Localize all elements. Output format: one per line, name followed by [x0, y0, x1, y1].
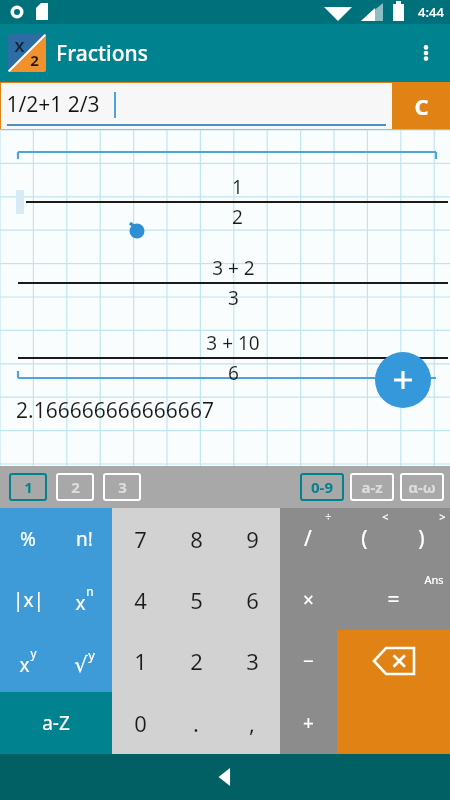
button[interactable]: 0 — [112, 692, 168, 754]
button[interactable]: ) — [393, 508, 450, 569]
staticText: − — [303, 648, 314, 674]
staticText: 6 — [246, 585, 259, 615]
staticText: 8 — [190, 524, 203, 554]
staticText: 4 — [134, 585, 147, 615]
staticText: y — [30, 645, 37, 661]
button[interactable]: Back — [203, 755, 247, 799]
staticText: × — [303, 587, 314, 613]
button[interactable]: / — [280, 508, 336, 569]
button[interactable]: More options — [402, 29, 450, 77]
button[interactable]: + — [280, 692, 337, 754]
staticText: C — [414, 91, 429, 121]
staticText: ) — [418, 524, 425, 553]
button[interactable]: 1 — [9, 473, 47, 501]
staticText: 3 — [228, 285, 239, 311]
button[interactable]: , — [224, 692, 280, 754]
button[interactable]: . — [168, 692, 224, 754]
staticText: 2 — [232, 204, 243, 230]
staticText: α-ω — [408, 477, 436, 497]
button[interactable]: a-z — [350, 473, 394, 501]
button[interactable]: Backspace — [337, 630, 450, 692]
staticText: 3 + 2 — [212, 255, 255, 281]
button[interactable]: x — [0, 630, 56, 692]
staticText: n — [86, 583, 94, 599]
staticText: X — [14, 36, 25, 56]
button[interactable]: × — [280, 569, 337, 630]
staticText: Fractions — [56, 39, 148, 68]
staticText: 2 — [71, 477, 80, 497]
button[interactable]: 3 — [103, 473, 141, 501]
button[interactable]: 1 — [112, 630, 168, 692]
staticText: 0-9 — [311, 477, 333, 497]
button[interactable]: 2 — [56, 473, 94, 501]
staticText: + — [303, 710, 314, 736]
staticText: 6 — [228, 360, 239, 386]
button[interactable]: − — [280, 630, 337, 692]
staticText: n! — [76, 526, 93, 552]
staticText: √ — [74, 653, 88, 677]
button[interactable]: Add — [375, 352, 431, 408]
staticText: 3 + 10 — [206, 330, 260, 356]
button[interactable]: App icon — [8, 34, 46, 72]
button[interactable]: C — [392, 82, 450, 130]
staticText: 1 — [24, 477, 33, 497]
button[interactable]: 6 — [224, 569, 280, 630]
staticText: 2 — [30, 50, 39, 70]
staticText: 0 — [134, 708, 147, 738]
staticText: Ans — [424, 572, 444, 587]
staticText: x — [75, 590, 86, 616]
staticText: |x| — [13, 587, 44, 613]
staticText: a-z — [361, 477, 383, 497]
staticText: 9 — [246, 524, 259, 554]
button[interactable]: 4 — [112, 569, 168, 630]
button[interactable]: 0-9 — [300, 473, 344, 501]
button[interactable]: 7 — [112, 508, 168, 569]
button[interactable]: √ — [56, 630, 112, 692]
button[interactable]: % — [0, 508, 56, 569]
staticText: 2 — [190, 646, 203, 676]
button[interactable]: = — [337, 569, 450, 630]
staticText: / — [304, 524, 312, 553]
button[interactable]: a-Z — [0, 692, 112, 754]
button[interactable]: 8 — [168, 508, 224, 569]
staticText: . — [193, 708, 199, 738]
staticText: 2.166666666666667 — [16, 396, 214, 425]
staticText: ÷ — [325, 509, 332, 524]
button[interactable]: x — [56, 569, 112, 630]
staticText: < — [382, 509, 389, 524]
staticText: x — [19, 652, 30, 678]
button[interactable]: 1/2+1 2/3 — [1, 83, 392, 129]
staticText: y — [88, 646, 95, 664]
staticText: 1 — [134, 646, 147, 676]
button[interactable]: α-ω — [400, 473, 444, 501]
button[interactable]: ( — [336, 508, 393, 569]
button[interactable]: 3 — [224, 630, 280, 692]
staticText: a-Z — [42, 710, 70, 736]
staticText: > — [439, 509, 446, 524]
staticText: , — [249, 708, 255, 738]
staticText: 3 — [246, 646, 259, 676]
button[interactable]: 5 — [168, 569, 224, 630]
staticText: 4:44 — [418, 3, 444, 21]
button[interactable]: 9 — [224, 508, 280, 569]
button[interactable]: n! — [56, 508, 112, 569]
staticText: 1/2+1 2/3 — [6, 90, 100, 119]
staticText: 3 — [118, 477, 127, 497]
staticText: = — [387, 585, 400, 614]
staticText: ( — [361, 524, 368, 553]
staticText: 1 — [232, 174, 243, 200]
staticText: % — [20, 526, 36, 552]
staticText: 5 — [190, 585, 203, 615]
button[interactable]: |x| — [0, 569, 56, 630]
button[interactable]: 2 — [168, 630, 224, 692]
staticText: 7 — [134, 524, 147, 554]
